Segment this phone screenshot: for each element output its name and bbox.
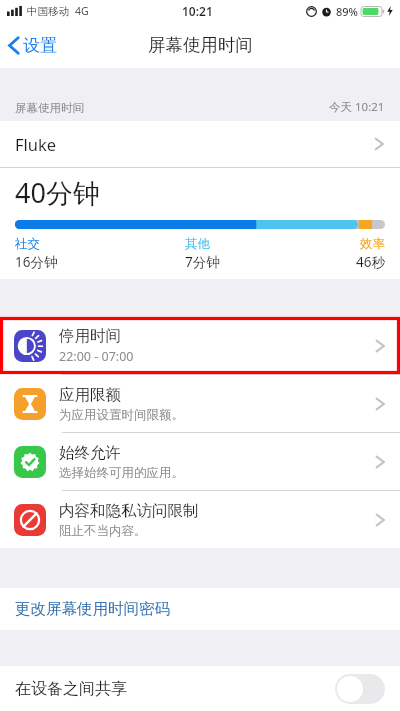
button[interactable]: 在设备之间共享 (0, 666, 400, 711)
staticText: 内容和隐私访问限制 (59, 501, 199, 521)
staticText: 应用限额 (59, 385, 121, 405)
staticText: 22:00 - 07:00 (59, 348, 134, 365)
staticText: 今天 10:21 (329, 99, 385, 115)
button[interactable]: 应用限额 (0, 375, 400, 433)
staticText: 4G (75, 4, 89, 18)
staticText: 设置 (23, 35, 57, 56)
staticText: 更改屏幕使用时间密码 (15, 599, 170, 619)
button[interactable]: 停用时间 (0, 317, 400, 375)
staticText: 16分钟 (15, 253, 58, 271)
staticText: 始终允许 (59, 443, 121, 463)
button[interactable]: Fluke (0, 121, 400, 167)
staticText: 社交 (15, 236, 40, 252)
staticText: 7分钟 (185, 253, 220, 271)
button[interactable]: Back to 设置 (0, 29, 67, 62)
button[interactable]: 更改屏幕使用时间密码 (0, 588, 400, 630)
staticText: 阻止不当内容。 (59, 523, 147, 539)
staticText: 89% (336, 4, 358, 19)
staticText: 停用时间 (59, 326, 121, 346)
staticText: 10:21 (182, 3, 213, 19)
staticText: 46秒 (356, 253, 385, 271)
staticText: 为应用设置时间限额。 (59, 407, 184, 423)
staticText: 其他 (185, 236, 210, 252)
staticText: 40分钟 (15, 174, 100, 211)
staticText: Fluke (15, 133, 374, 155)
button[interactable]: 始终允许 (0, 433, 400, 491)
staticText: 中国移动 (27, 5, 69, 18)
button[interactable]: 内容和隐私访问限制 (0, 491, 400, 548)
staticText: 选择始终可用的应用。 (59, 465, 184, 481)
staticText: 屏幕使用时间 (148, 34, 253, 56)
staticText: 屏幕使用时间 (15, 101, 84, 115)
staticText: 效率 (360, 236, 385, 252)
staticText: 在设备之间共享 (15, 679, 335, 699)
